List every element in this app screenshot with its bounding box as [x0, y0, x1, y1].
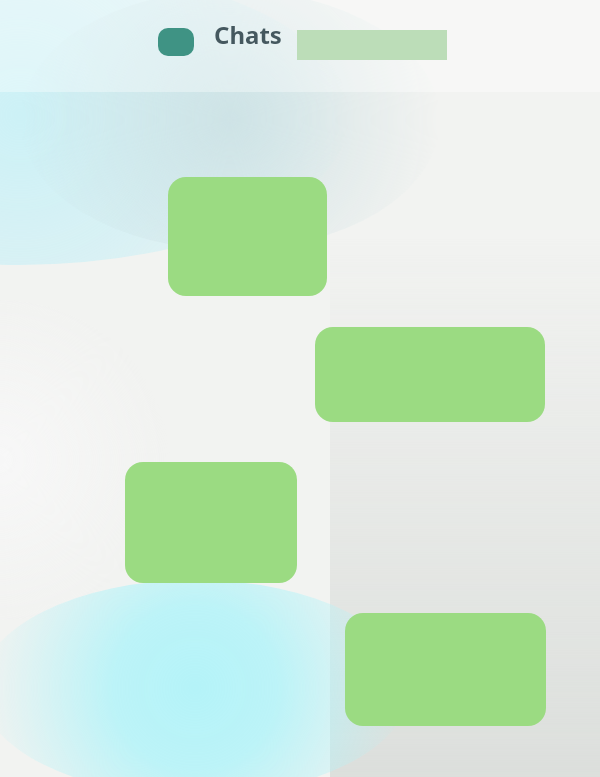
button[interactable]	[345, 613, 546, 726]
button[interactable]	[168, 177, 327, 296]
button[interactable]	[315, 327, 545, 422]
button[interactable]: Profile	[158, 28, 194, 56]
staticText: Chats	[214, 18, 282, 51]
button[interactable]	[125, 462, 297, 583]
